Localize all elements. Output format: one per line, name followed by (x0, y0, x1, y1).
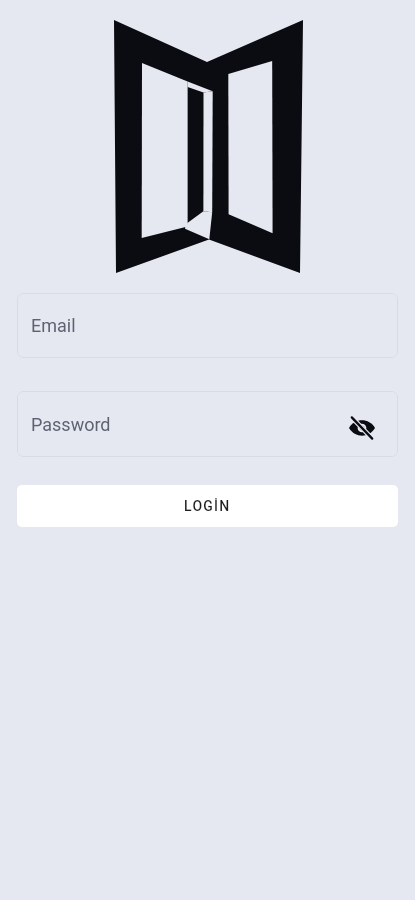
button[interactable]: Email (17, 293, 398, 358)
staticText: Password (31, 414, 111, 435)
button[interactable]: Password (17, 391, 398, 457)
staticText: LOGİN (184, 498, 231, 514)
button[interactable]: Toggle password visibility (342, 404, 382, 444)
button[interactable]: LOGİN (17, 485, 398, 527)
staticText: Email (31, 315, 76, 336)
